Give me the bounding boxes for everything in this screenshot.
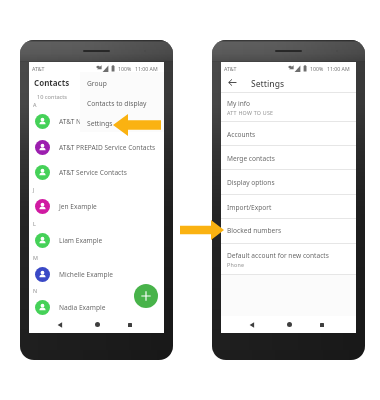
- button[interactable]: Display options: [227, 178, 275, 187]
- staticText: ATT HOW TO USE: [227, 109, 274, 116]
- staticText: Settings: [87, 119, 113, 128]
- staticText: 11:00 AM: [327, 65, 350, 72]
- button[interactable]: My info: [227, 99, 274, 116]
- staticText: Michelle Example: [59, 270, 113, 279]
- button[interactable]: Group: [80, 73, 164, 93]
- staticText: Display options: [227, 178, 275, 187]
- button[interactable]: Back: [49, 316, 71, 333]
- button[interactable]: AT&T Service Contacts: [29, 160, 164, 185]
- staticText: Liam Example: [59, 236, 103, 245]
- staticText: Nadia Example: [59, 303, 106, 312]
- staticText: Contacts to display: [87, 99, 147, 108]
- staticText: Group: [87, 79, 107, 88]
- staticText: Settings: [251, 78, 285, 90]
- button[interactable]: Add contact: [134, 284, 158, 308]
- staticText: N: [33, 287, 38, 294]
- button[interactable]: AT&T PREPAID Service Contacts: [29, 135, 164, 160]
- button[interactable]: Contacts to display: [80, 93, 164, 113]
- button[interactable]: Default account for new contacts: [227, 251, 329, 268]
- staticText: L: [33, 220, 36, 227]
- staticText: Merge contacts: [227, 154, 275, 163]
- staticText: Contacts: [34, 77, 70, 88]
- staticText: Jen Example: [59, 202, 97, 211]
- staticText: My info: [227, 99, 251, 108]
- staticText: Blocked numbers: [227, 226, 282, 235]
- button[interactable]: Accounts: [227, 130, 256, 139]
- staticText: Phone: [227, 261, 245, 268]
- staticText: AT&T: [32, 65, 45, 72]
- staticText: A: [33, 101, 37, 108]
- staticText: J: [33, 186, 35, 193]
- button[interactable]: Recent apps: [119, 316, 141, 333]
- staticText: 100%: [118, 65, 132, 72]
- button[interactable]: AT&T Nadia Example: [29, 109, 164, 134]
- staticText: AT&T Nadia Example: [59, 117, 123, 126]
- button[interactable]: Liam Example: [29, 228, 164, 253]
- button[interactable]: Home: [278, 316, 300, 333]
- staticText: AT&T Service Contacts: [59, 168, 127, 177]
- staticText: AT&T: [224, 65, 237, 72]
- staticText: Accounts: [227, 130, 256, 139]
- button[interactable]: Recent apps: [311, 316, 333, 333]
- staticText: M: [33, 254, 38, 261]
- staticText: Import/Export: [227, 203, 272, 212]
- staticText: Default account for new contacts: [227, 251, 329, 260]
- button[interactable]: Michelle Example: [29, 262, 164, 287]
- button[interactable]: Settings: [80, 113, 164, 133]
- staticText: 10 contacts: [37, 93, 67, 101]
- staticText: AT&T PREPAID Service Contacts: [59, 143, 156, 152]
- button[interactable]: Home: [86, 316, 108, 333]
- button[interactable]: Import/Export: [227, 203, 272, 212]
- staticText: 11:00 AM: [135, 65, 158, 72]
- button[interactable]: Nadia Example: [29, 295, 164, 320]
- button[interactable]: Jen Example: [29, 194, 164, 219]
- button[interactable]: Blocked numbers: [227, 226, 282, 235]
- button[interactable]: Back: [241, 316, 263, 333]
- button[interactable]: Merge contacts: [227, 154, 275, 163]
- staticText: 100%: [310, 65, 324, 72]
- button[interactable]: Back: [223, 73, 241, 91]
